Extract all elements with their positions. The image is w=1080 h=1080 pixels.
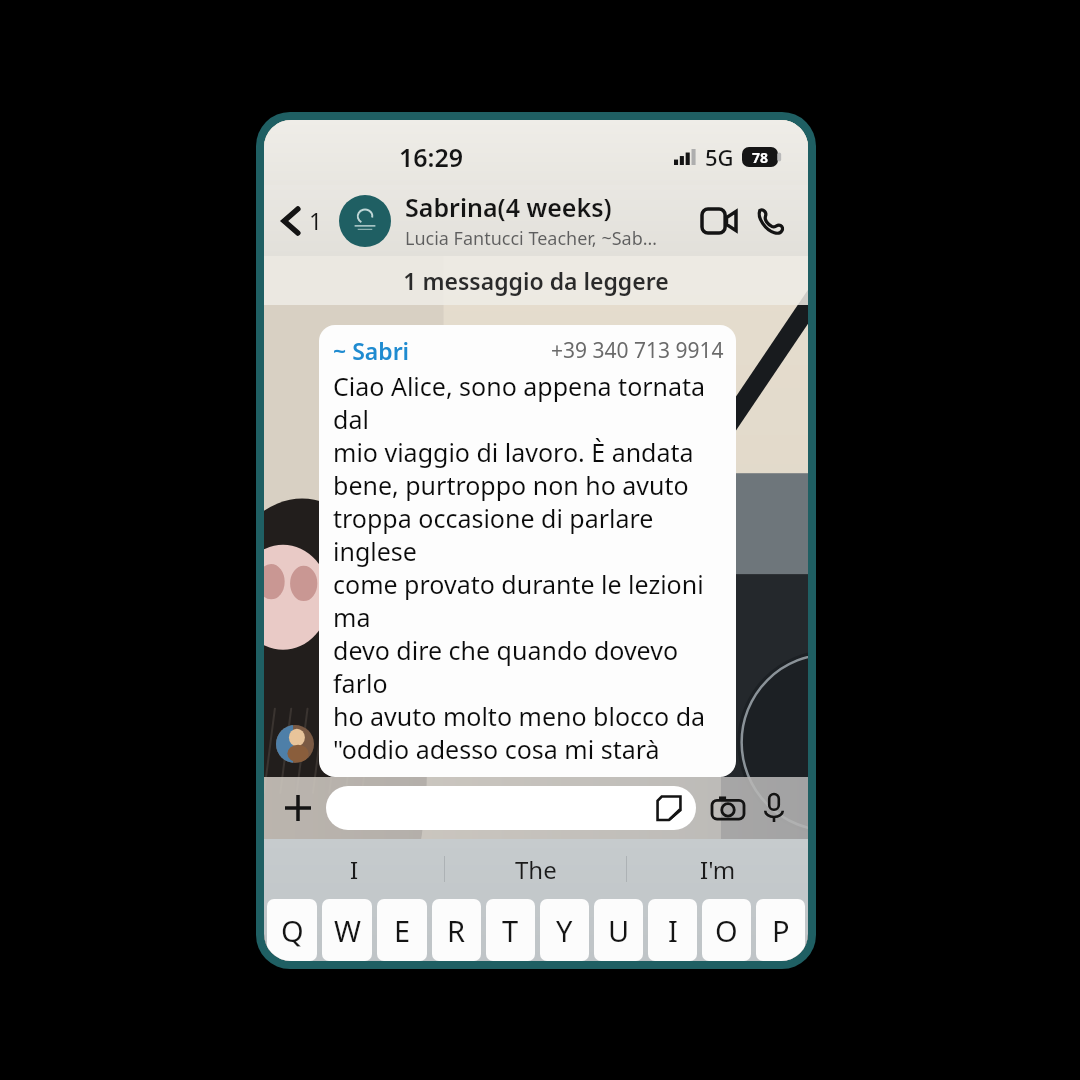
button[interactable]: E xyxy=(377,899,427,961)
staticText: Lucia Fantucci Teacher, ~Sab… xyxy=(405,226,657,251)
staticText: +39 340 713 9914 xyxy=(551,336,724,365)
button[interactable]: I xyxy=(648,899,697,961)
staticText: 5G xyxy=(705,142,734,172)
staticText: O xyxy=(715,911,738,950)
button[interactable]: Stickers xyxy=(326,786,696,830)
staticText: Y xyxy=(556,911,573,950)
staticText: W xyxy=(334,911,361,950)
staticText: I'm xyxy=(700,853,736,886)
staticText: The xyxy=(515,853,557,886)
staticText: 78 xyxy=(752,148,769,167)
staticText: Q xyxy=(281,911,304,950)
button[interactable]: Y xyxy=(540,899,589,961)
staticText: 1 xyxy=(309,205,323,236)
staticText: ~ Sabri xyxy=(333,335,410,366)
staticText: 16:29 xyxy=(399,140,464,174)
staticText: Ciao Alice, sono appena tornata dal mio … xyxy=(333,369,724,771)
button[interactable]: P xyxy=(756,899,805,961)
button[interactable]: Attach xyxy=(278,788,318,828)
button[interactable]: I xyxy=(264,839,444,899)
button[interactable]: Video call xyxy=(696,198,742,244)
button[interactable]: Voice message xyxy=(754,788,794,828)
button[interactable]: U xyxy=(594,899,643,961)
button[interactable]: R xyxy=(432,899,481,961)
button[interactable]: T xyxy=(486,899,535,961)
button[interactable]: Camera xyxy=(708,788,748,828)
button[interactable]: O xyxy=(702,899,751,961)
button[interactable]: I'm xyxy=(627,839,808,899)
button[interactable]: Stickers xyxy=(656,795,682,821)
button[interactable]: W xyxy=(322,899,372,961)
button[interactable]: Back xyxy=(278,205,327,236)
staticText: P xyxy=(772,911,790,950)
staticText: 1 messaggio da leggere xyxy=(403,265,669,296)
staticText: Sabrina(4 weeks) xyxy=(405,190,612,224)
button[interactable]: Voice call xyxy=(748,198,794,244)
button[interactable]: The xyxy=(445,839,626,899)
staticText: R xyxy=(447,911,466,950)
staticText: U xyxy=(608,911,630,950)
staticText: I xyxy=(668,911,678,950)
button[interactable]: ~ Sabri xyxy=(319,325,736,777)
button[interactable]: Q xyxy=(267,899,317,961)
staticText: E xyxy=(394,911,411,950)
staticText: T xyxy=(502,911,519,950)
button[interactable]: Sabrina(4 weeks) xyxy=(339,190,696,251)
staticText: I xyxy=(350,853,359,886)
